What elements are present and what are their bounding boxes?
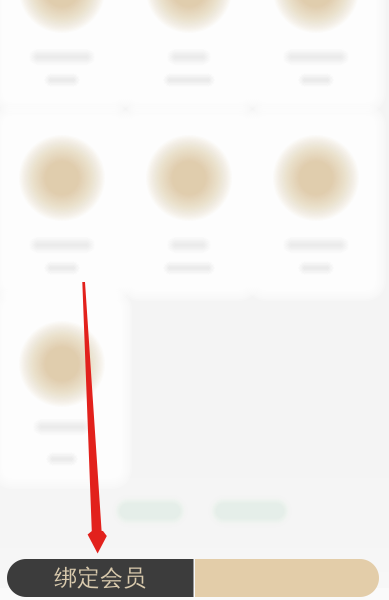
button[interactable]: 立即购买 bbox=[195, 559, 379, 597]
staticText: 绑定会员 bbox=[54, 564, 146, 592]
button[interactable]: 绑定会员 bbox=[7, 559, 193, 597]
